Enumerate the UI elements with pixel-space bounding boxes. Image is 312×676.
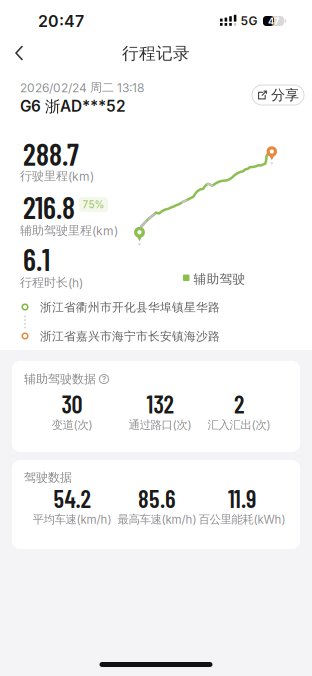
staticText: 驾驶数据 — [24, 470, 72, 485]
staticText: 6.1 — [23, 241, 50, 277]
staticText: 分享 — [271, 86, 299, 104]
staticText: 216.8 — [23, 189, 75, 225]
staticText: 行程记录 — [122, 43, 190, 64]
staticText: 30 — [61, 389, 82, 418]
staticText: 辅助驾驶数据 — [24, 371, 96, 387]
staticText: 平均车速(km/h) — [32, 512, 111, 527]
staticText: 通过路口(次) — [128, 418, 191, 432]
staticText: 变道(次) — [51, 418, 92, 432]
staticText: 85.6 — [138, 483, 176, 513]
staticText: 2026/02/24 周二 13:18 — [20, 80, 144, 95]
button[interactable]: 辅助驾驶数据说明 — [99, 374, 109, 384]
staticText: 辅助驾驶里程(km) — [20, 223, 118, 238]
staticText: 浙江省衢州市开化县华埠镇星华路 — [40, 300, 220, 315]
staticText: 最高车速(km/h) — [117, 512, 196, 527]
staticText: ? — [102, 374, 106, 384]
staticText: 11.9 — [228, 483, 256, 513]
staticText: 辅助驾驶 — [193, 271, 245, 287]
staticText: 5G — [240, 13, 257, 28]
staticText: 浙江省嘉兴市海宁市长安镇海沙路 — [40, 329, 220, 344]
button[interactable]: Back — [7, 40, 31, 64]
staticText: 47 — [268, 15, 279, 27]
staticText: G6 浙AD***52 — [20, 97, 126, 116]
staticText: 汇入汇出(次) — [207, 418, 270, 432]
staticText: 2 — [234, 389, 244, 418]
staticText: 75% — [82, 199, 104, 210]
staticText: 288.7 — [23, 136, 79, 172]
staticText: 54.2 — [53, 483, 90, 513]
staticText: 20:47 — [38, 11, 84, 31]
staticText: 百公里能耗(kWh) — [198, 512, 285, 527]
button[interactable]: 分享 — [252, 85, 304, 105]
staticText: 行程时长(h) — [20, 275, 83, 290]
staticText: 行驶里程(km) — [20, 168, 94, 184]
staticText: 132 — [146, 389, 173, 418]
